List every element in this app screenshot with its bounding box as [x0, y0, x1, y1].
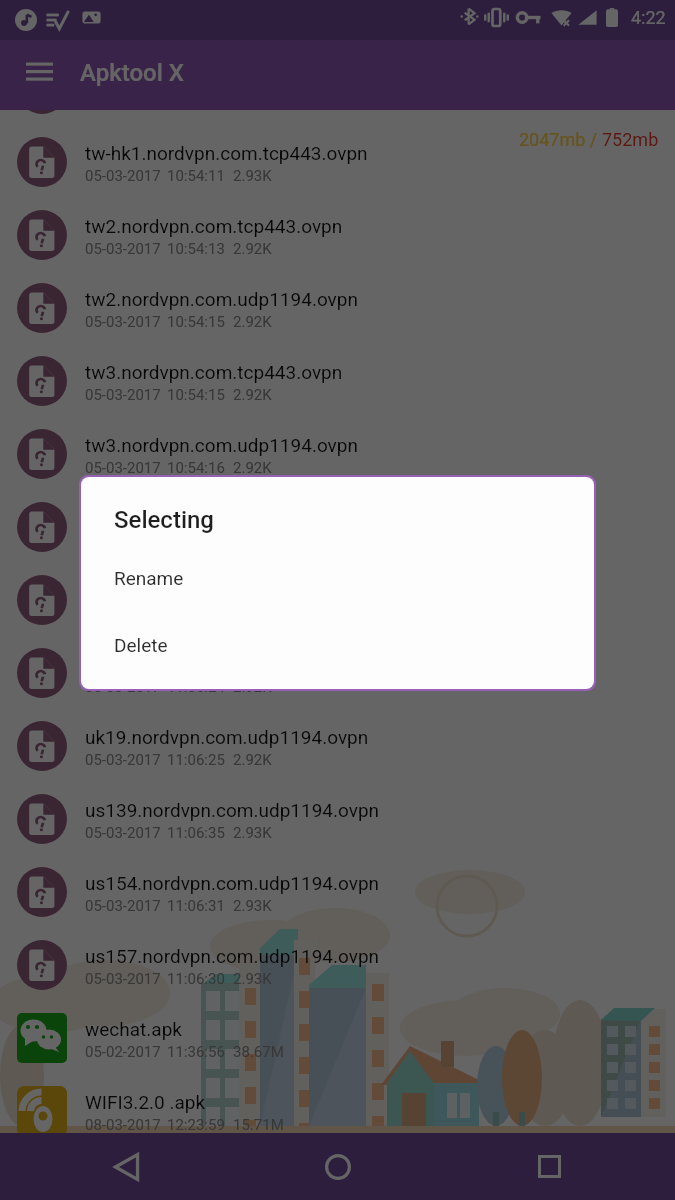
staticText: us157.nordvpn.com.udp1194.ovpn	[85, 945, 380, 967]
staticText: 11:36:56	[167, 1043, 225, 1061]
staticText: 2.93K	[233, 824, 272, 842]
staticText: 2047mb /	[519, 129, 602, 150]
button[interactable]: uk19.nordvpn.com.tcp443.ovpn	[0, 636, 675, 709]
button[interactable]: Back	[72, 1133, 180, 1200]
staticText: 11:06:31	[167, 897, 225, 915]
staticText: 2.92K	[233, 240, 272, 258]
staticText: 05-03-2017	[85, 459, 161, 477]
staticText: WIFI3.2.0 .apk	[85, 1091, 206, 1113]
staticText: tw3.nordvpn.com.udp1194.ovpn	[85, 434, 358, 456]
staticText: 2.92K	[233, 751, 272, 769]
staticText: tw3.nordvpn.com.tcp443.ovpn	[85, 361, 343, 383]
button[interactable]: us154.nordvpn.com.udp1194.ovpn	[0, 855, 675, 928]
staticText: 2.92K	[233, 459, 272, 477]
button[interactable]: Rename	[81, 554, 594, 602]
staticText: wechat.apk	[85, 1018, 182, 1040]
staticText: tw-hk1.nordvpn.com.udp1194.ovpn	[85, 69, 384, 91]
staticText: 05-03-2017	[85, 240, 161, 258]
staticText: 2.92K	[233, 678, 272, 696]
staticText: tw2.nordvpn.com.udp1194.ovpn	[85, 288, 358, 310]
staticText: 11:06:35	[167, 824, 225, 842]
staticText: 4:22	[631, 7, 666, 28]
staticText: 10:54:10	[167, 94, 225, 112]
staticText: 05-03-2017	[85, 751, 161, 769]
staticText: 05-03-2017	[85, 94, 161, 112]
staticText: 752mb	[602, 129, 659, 150]
staticText: Selecting	[114, 506, 214, 534]
staticText: 11:06:25	[167, 751, 225, 769]
button[interactable]: Open navigation drawer	[17, 49, 61, 93]
staticText: 38.67M	[233, 1043, 284, 1061]
staticText: us154.nordvpn.com.udp1194.ovpn	[85, 872, 380, 894]
staticText: 12:23:59	[167, 1116, 225, 1134]
staticText: 05-02-2017	[85, 1043, 161, 1061]
staticText: 2.93K	[233, 167, 272, 185]
staticText: 15.71M	[233, 1116, 284, 1134]
staticText: 11:06:24	[167, 678, 225, 696]
staticText: uk1.nordvpn.com.tcp443.ovpn	[85, 507, 342, 529]
staticText: 05-03-2017	[85, 678, 161, 696]
staticText: 10:54:16	[167, 459, 225, 477]
staticText: tw2.nordvpn.com.tcp443.ovpn	[85, 215, 343, 237]
staticText: uk1.nordvpn.com.udp1194.ovpn	[85, 580, 358, 602]
button[interactable]: us157.nordvpn.com.udp1194.ovpn	[0, 928, 675, 1001]
staticText: Rename	[114, 567, 184, 589]
button[interactable]: WIFI3.2.0 .apk	[0, 1074, 675, 1147]
staticText: uk19.nordvpn.com.udp1194.ovpn	[85, 726, 369, 748]
button[interactable]: tw-hk1.nordvpn.com.udp1194.ovpn	[0, 52, 675, 125]
button[interactable]: tw3.nordvpn.com.udp1194.ovpn	[0, 417, 675, 490]
staticText: Apktool X	[80, 59, 184, 87]
staticText: 10:54:15	[167, 386, 225, 404]
staticText: 10:54:11	[167, 167, 225, 185]
staticText: 2.93K	[233, 970, 272, 988]
button[interactable]: tw-hk1.nordvpn.com.tcp443.ovpn	[0, 125, 675, 198]
staticText: 11:06:20	[167, 532, 225, 550]
button[interactable]: Delete	[81, 621, 594, 669]
staticText: us139.nordvpn.com.udp1194.ovpn	[85, 799, 380, 821]
staticText: 2.92K	[233, 313, 272, 331]
staticText: 05-03-2017	[85, 970, 161, 988]
staticText: 05-03-2017	[85, 313, 161, 331]
button[interactable]: uk1.nordvpn.com.udp1194.ovpn	[0, 563, 675, 636]
staticText: 2.93K	[233, 897, 272, 915]
staticText: 10:54:13	[167, 240, 225, 258]
staticText: Delete	[114, 634, 168, 656]
button[interactable]: uk19.nordvpn.com.udp1194.ovpn	[0, 709, 675, 782]
staticText: 05-03-2017	[85, 386, 161, 404]
staticText: 05-03-2017	[85, 897, 161, 915]
staticText: tw-hk1.nordvpn.com.tcp443.ovpn	[85, 142, 368, 164]
button[interactable]: tw3.nordvpn.com.tcp443.ovpn	[0, 344, 675, 417]
staticText: 2.92K	[233, 94, 272, 112]
button[interactable]: uk1.nordvpn.com.tcp443.ovpn	[0, 490, 675, 563]
staticText: 05-03-2017	[85, 167, 161, 185]
button[interactable]: us139.nordvpn.com.udp1194.ovpn	[0, 782, 675, 855]
button[interactable]: Recent apps	[495, 1133, 603, 1200]
staticText: 2.92K	[233, 386, 272, 404]
staticText: 11:06:30	[167, 970, 225, 988]
button[interactable]: Home	[284, 1133, 392, 1200]
button[interactable]: tw2.nordvpn.com.udp1194.ovpn	[0, 271, 675, 344]
staticText: 05-03-2017	[85, 824, 161, 842]
staticText: 08-03-2017	[85, 1116, 161, 1134]
button[interactable]: wechat.apk	[0, 1001, 675, 1074]
staticText: 10:54:15	[167, 313, 225, 331]
button[interactable]: tw2.nordvpn.com.tcp443.ovpn	[0, 198, 675, 271]
